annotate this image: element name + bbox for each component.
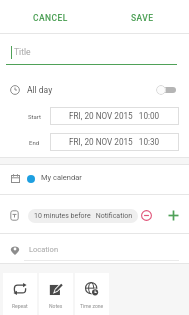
button[interactable]: 10 minutes before Notification <box>28 209 138 223</box>
button[interactable]: SAVE <box>131 13 154 23</box>
button[interactable]: My calendar <box>0 168 189 188</box>
button[interactable]: Add notification <box>167 209 180 222</box>
button[interactable]: Notes <box>39 273 73 315</box>
staticText: CANCEL <box>33 13 68 23</box>
other: All day toggle <box>156 85 176 95</box>
staticText: FRI, 20 NOV 2015 10:00 <box>69 111 160 121</box>
button[interactable]: All day <box>0 80 189 100</box>
button[interactable]: Time zone <box>75 273 109 315</box>
staticText: Title <box>14 47 31 57</box>
staticText: Location <box>29 245 59 254</box>
button[interactable]: Remove notification <box>141 210 152 221</box>
staticText: Time zone <box>80 303 104 309</box>
button[interactable]: FRI, 20 NOV 2015 10:00 <box>50 107 179 125</box>
staticText: 10 minutes before Notification <box>34 212 132 220</box>
staticText: My calendar <box>41 173 82 182</box>
button[interactable]: FRI, 20 NOV 2015 10:30 <box>50 133 179 151</box>
staticText: Start <box>28 113 41 120</box>
button[interactable]: Repeat <box>3 273 37 315</box>
button[interactable]: Location <box>0 240 189 260</box>
staticText: End <box>29 139 40 146</box>
staticText: Repeat <box>12 303 28 309</box>
staticText: Notes <box>49 303 63 309</box>
button[interactable]: Title <box>0 42 189 66</box>
staticText: All day <box>27 85 53 95</box>
button[interactable]: CANCEL <box>33 13 68 23</box>
staticText: FRI, 20 NOV 2015 10:30 <box>69 137 160 147</box>
staticText: SAVE <box>131 13 154 23</box>
